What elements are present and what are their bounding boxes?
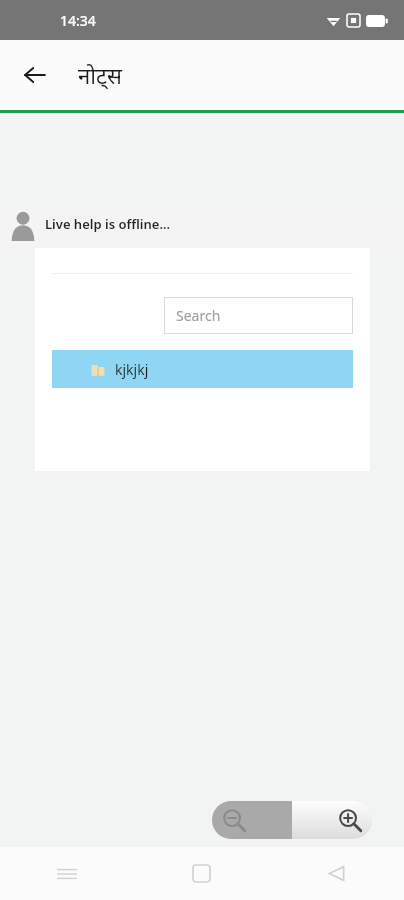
button[interactable]: Home xyxy=(134,847,269,900)
staticText: 14:34 xyxy=(60,11,96,30)
button[interactable]: Live help is offline... xyxy=(0,203,404,245)
button[interactable]: Search xyxy=(164,297,353,334)
button[interactable]: Zoom in xyxy=(292,801,372,839)
staticText: Search xyxy=(176,306,221,325)
button[interactable]: Back xyxy=(269,847,404,900)
button[interactable]: Zoom out xyxy=(212,801,292,839)
button[interactable]: kjkjkj xyxy=(52,350,353,388)
button[interactable]: Back xyxy=(12,52,58,98)
button[interactable]: Recent apps xyxy=(0,847,134,900)
staticText: नोट्स xyxy=(78,60,122,90)
staticText: kjkjkj xyxy=(115,360,149,379)
staticText: Live help is offline... xyxy=(45,215,171,233)
